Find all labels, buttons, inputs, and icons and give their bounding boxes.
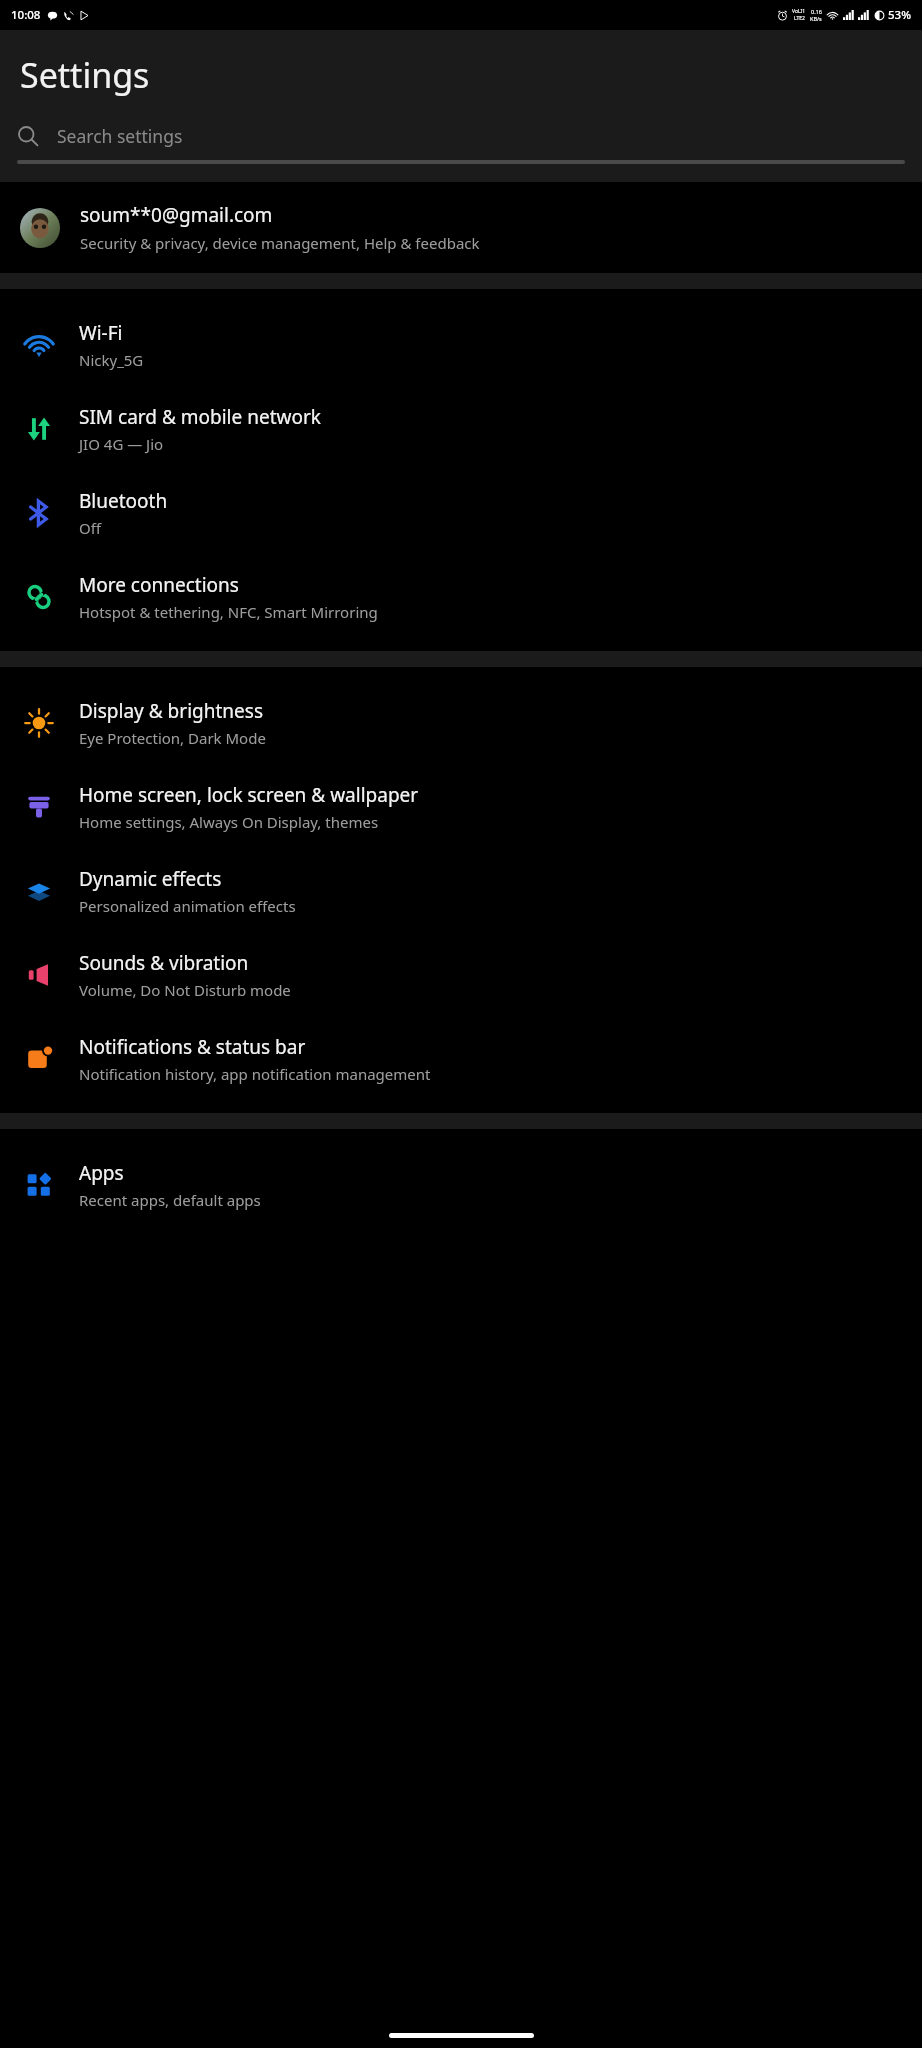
staticText: Apps xyxy=(79,1160,124,1186)
staticText: 53% xyxy=(888,7,911,23)
staticText: Display & brightness xyxy=(79,698,263,724)
button[interactable]: Display & brightness xyxy=(0,681,922,765)
staticText: Home screen, lock screen & wallpaper xyxy=(79,782,419,808)
staticText: KB/s xyxy=(810,15,822,22)
staticText: Off xyxy=(79,518,102,538)
staticText: VoLI1 xyxy=(792,8,806,15)
staticText: Personalized animation effects xyxy=(79,896,296,916)
staticText: Bluetooth xyxy=(79,488,168,514)
staticText: Eye Protection, Dark Mode xyxy=(79,728,266,748)
staticText: 0.16 xyxy=(811,8,822,15)
button[interactable]: SIM card & mobile network xyxy=(0,387,922,471)
button[interactable]: More connections xyxy=(0,555,922,639)
staticText: Search settings xyxy=(57,124,183,148)
button[interactable]: Bluetooth xyxy=(0,471,922,555)
button[interactable]: Sounds & vibration xyxy=(0,933,922,1017)
staticText: Wi-Fi xyxy=(79,320,123,346)
staticText: Security & privacy, device management, H… xyxy=(80,233,480,253)
staticText: Dynamic effects xyxy=(79,866,222,892)
staticText: Home settings, Always On Display, themes xyxy=(79,812,379,832)
button[interactable]: Notifications & status bar xyxy=(0,1017,922,1101)
staticText: Nicky_5G xyxy=(79,350,144,370)
staticText: Volume, Do Not Disturb mode xyxy=(79,980,291,1000)
staticText: Notification history, app notification m… xyxy=(79,1064,431,1084)
button[interactable]: Dynamic effects xyxy=(0,849,922,933)
staticText: Settings xyxy=(20,52,150,98)
staticText: More connections xyxy=(79,572,239,598)
staticText: soum**0@gmail.com xyxy=(80,202,273,228)
staticText: Sounds & vibration xyxy=(79,950,249,976)
staticText: 10:08 xyxy=(11,7,41,23)
button[interactable]: Wi-Fi xyxy=(0,303,922,387)
staticText: Recent apps, default apps xyxy=(79,1190,261,1210)
button[interactable]: Home screen, lock screen & wallpaper xyxy=(0,765,922,849)
staticText: SIM card & mobile network xyxy=(79,404,321,430)
button[interactable]: Search settings xyxy=(17,120,905,152)
staticText: Hotspot & tethering, NFC, Smart Mirrorin… xyxy=(79,602,378,622)
staticText: Notifications & status bar xyxy=(79,1034,306,1060)
button[interactable]: Apps xyxy=(0,1143,922,1227)
button[interactable]: soum**0@gmail.com xyxy=(0,182,922,273)
staticText: JIO 4G — Jio xyxy=(79,434,164,454)
staticText: LTE2 xyxy=(794,15,805,22)
